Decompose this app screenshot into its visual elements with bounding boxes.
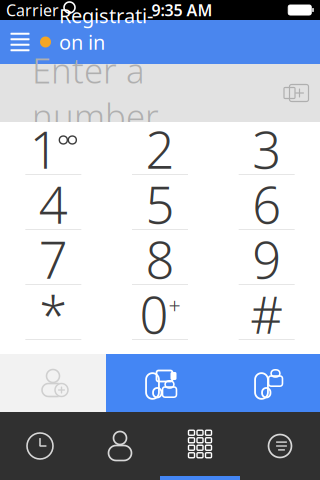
staticText: Registration in progress xyxy=(59,2,153,82)
staticText: 0 xyxy=(139,280,168,348)
button[interactable]: # xyxy=(213,287,320,342)
button[interactable]: 7 xyxy=(0,232,107,287)
button[interactable]: Secure call xyxy=(213,354,320,412)
button[interactable]: Keypad xyxy=(160,412,240,480)
staticText: * xyxy=(39,280,67,348)
staticText: # xyxy=(250,280,283,348)
button[interactable]: 8 xyxy=(107,232,213,287)
button[interactable]: Add contact xyxy=(0,354,106,412)
button[interactable]: 0 xyxy=(107,287,213,342)
staticText: 7 xyxy=(39,225,68,293)
staticText: 3 xyxy=(252,115,281,183)
button[interactable]: 6 xyxy=(213,177,320,232)
button[interactable]: Delete xyxy=(272,67,320,119)
staticText: Enter a number xyxy=(32,47,159,139)
button[interactable]: 4 xyxy=(0,177,107,232)
staticText: 8 xyxy=(145,225,174,293)
button[interactable]: 9 xyxy=(213,232,320,287)
button[interactable]: 5 xyxy=(107,177,213,232)
button[interactable]: Messages xyxy=(240,412,320,480)
button[interactable]: Menu xyxy=(0,20,40,64)
button[interactable]: 1 xyxy=(0,122,107,177)
staticText: 2 xyxy=(145,115,174,183)
staticText: 4 xyxy=(39,170,68,238)
button[interactable]: Registration in progress xyxy=(40,0,180,94)
staticText: 9:35 AM xyxy=(151,0,212,21)
staticText: 9 xyxy=(252,225,281,293)
staticText: + xyxy=(168,292,180,320)
button[interactable]: 3 xyxy=(213,122,320,177)
button[interactable]: 2 xyxy=(107,122,213,177)
button[interactable]: Secure video call xyxy=(106,354,213,412)
staticText: 6 xyxy=(252,170,281,238)
button[interactable]: Contacts xyxy=(80,412,160,480)
staticText: 1 xyxy=(30,115,59,183)
button[interactable]: Recents xyxy=(0,412,80,480)
staticText: 5 xyxy=(145,170,174,238)
staticText: Carrier xyxy=(6,0,59,21)
button[interactable]: * xyxy=(0,287,107,342)
